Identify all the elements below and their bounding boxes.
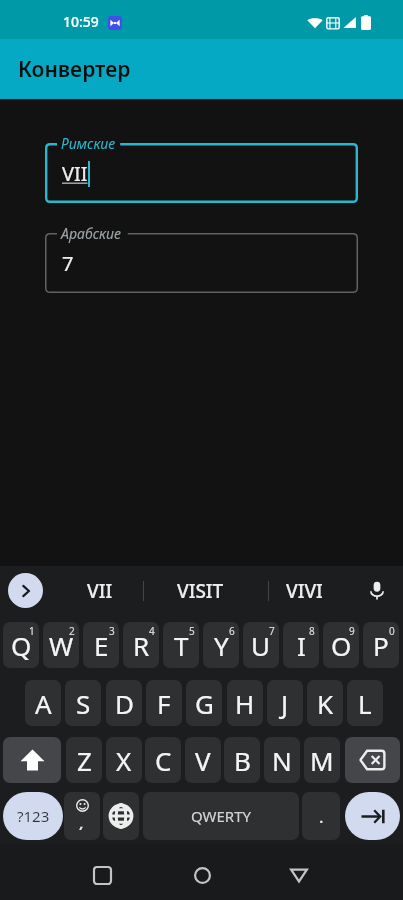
- staticText: D: [115, 686, 134, 721]
- button[interactable]: VIVI: [270, 573, 338, 608]
- button[interactable]: I: [283, 622, 319, 668]
- staticText: N: [272, 743, 292, 778]
- button[interactable]: U: [243, 622, 279, 668]
- button[interactable]: D: [106, 680, 142, 726]
- staticText: E: [94, 628, 109, 663]
- staticText: H: [235, 686, 255, 721]
- staticText: 5: [189, 624, 195, 638]
- button[interactable]: R: [123, 622, 159, 668]
- button[interactable]: H: [227, 680, 263, 726]
- button[interactable]: N: [264, 737, 300, 783]
- button[interactable]: More suggestions: [8, 573, 43, 608]
- button[interactable]: QWERTY: [143, 792, 299, 840]
- button[interactable]: S: [65, 680, 101, 726]
- staticText: O: [331, 628, 352, 663]
- staticText: V: [195, 743, 211, 778]
- button[interactable]: M: [304, 737, 340, 783]
- button[interactable]: E: [83, 622, 119, 668]
- staticText: U: [251, 628, 271, 663]
- staticText: VII: [62, 160, 88, 187]
- staticText: G: [195, 686, 214, 721]
- staticText: Конвертер: [18, 55, 131, 84]
- staticText: 7: [62, 250, 74, 277]
- button[interactable]: A: [25, 680, 61, 726]
- staticText: ?123: [17, 806, 50, 826]
- staticText: S: [76, 686, 91, 721]
- button[interactable]: P: [363, 622, 399, 668]
- button[interactable]: Change keyboard language: [103, 792, 139, 840]
- staticText: Z: [77, 743, 92, 778]
- button[interactable]: W: [43, 622, 79, 668]
- staticText: J: [281, 686, 289, 721]
- staticText: 10:59: [63, 12, 99, 31]
- staticText: W: [49, 628, 74, 663]
- staticText: 1: [29, 624, 35, 638]
- button[interactable]: X: [106, 737, 142, 783]
- button[interactable]: Backspace: [345, 737, 400, 783]
- button[interactable]: Q: [3, 622, 39, 668]
- button[interactable]: Shift: [3, 737, 61, 783]
- button[interactable]: VII: [66, 573, 134, 608]
- button[interactable]: ?123: [3, 792, 63, 840]
- staticText: ,: [80, 814, 84, 832]
- staticText: 9: [349, 624, 355, 638]
- staticText: R: [133, 628, 150, 663]
- button[interactable]: Voice input: [360, 573, 394, 607]
- button[interactable]: Recent apps: [78, 851, 126, 899]
- button[interactable]: VISIT: [166, 573, 234, 608]
- button[interactable]: Back: [275, 851, 323, 899]
- button[interactable]: G: [186, 680, 222, 726]
- staticText: P: [373, 628, 389, 663]
- staticText: L: [358, 686, 372, 721]
- staticText: .: [319, 805, 324, 828]
- staticText: VISIT: [177, 578, 224, 604]
- staticText: Y: [214, 628, 229, 663]
- staticText: K: [317, 686, 334, 721]
- button[interactable]: Арабские: [45, 233, 358, 293]
- button[interactable]: Home: [178, 851, 226, 899]
- staticText: A: [35, 686, 52, 721]
- button[interactable]: F: [146, 680, 182, 726]
- button[interactable]: Enter: [345, 792, 400, 840]
- staticText: 3: [109, 624, 115, 638]
- button[interactable]: V: [185, 737, 221, 783]
- staticText: Арабские: [61, 224, 121, 243]
- button[interactable]: Emoji: [64, 792, 100, 840]
- staticText: T: [174, 628, 189, 663]
- button[interactable]: K: [307, 680, 343, 726]
- staticText: Римские: [61, 134, 116, 153]
- staticText: 2: [69, 624, 75, 638]
- staticText: 4: [149, 624, 155, 638]
- button[interactable]: .: [302, 792, 340, 840]
- staticText: 8: [309, 624, 315, 638]
- button[interactable]: Z: [66, 737, 102, 783]
- staticText: B: [234, 743, 251, 778]
- staticText: VIVI: [286, 578, 323, 604]
- button[interactable]: Y: [203, 622, 239, 668]
- button[interactable]: Римские: [45, 143, 358, 203]
- staticText: M: [310, 743, 334, 778]
- staticText: VII: [87, 578, 113, 604]
- staticText: 7: [269, 624, 275, 638]
- button[interactable]: B: [224, 737, 260, 783]
- staticText: X: [116, 743, 132, 778]
- button[interactable]: L: [347, 680, 383, 726]
- staticText: C: [155, 743, 172, 778]
- staticText: F: [157, 686, 171, 721]
- button[interactable]: J: [267, 680, 303, 726]
- staticText: I: [297, 628, 306, 663]
- button[interactable]: O: [323, 622, 359, 668]
- staticText: 0: [389, 624, 395, 638]
- staticText: Q: [11, 628, 32, 663]
- button[interactable]: C: [145, 737, 181, 783]
- button[interactable]: T: [163, 622, 199, 668]
- staticText: QWERTY: [191, 806, 252, 826]
- staticText: 6: [229, 624, 235, 638]
